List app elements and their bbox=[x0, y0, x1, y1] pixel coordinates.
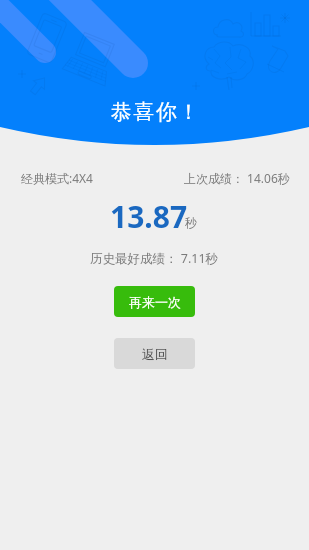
staticText: 返回 bbox=[142, 346, 168, 362]
staticText: 秒 bbox=[185, 215, 197, 230]
staticText: 历史最好成绩： 7.11秒 bbox=[90, 250, 219, 267]
button[interactable]: 返回 bbox=[114, 338, 195, 369]
button[interactable]: 再来一次 bbox=[114, 286, 195, 317]
staticText: 上次成绩： 14.06秒 bbox=[184, 170, 290, 186]
staticText: 经典模式:4X4 bbox=[21, 170, 93, 186]
staticText: 13.87 bbox=[110, 196, 188, 237]
staticText: 恭喜你！ bbox=[110, 99, 200, 125]
staticText: 再来一次 bbox=[129, 294, 181, 310]
